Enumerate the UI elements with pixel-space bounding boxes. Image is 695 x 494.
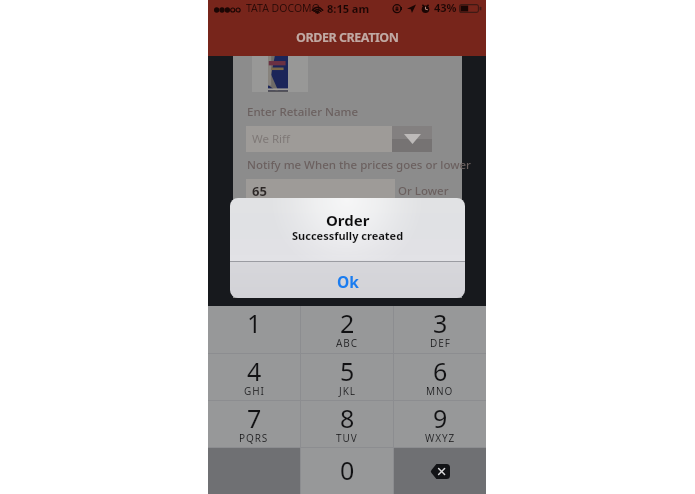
button[interactable]: 7 xyxy=(208,401,300,447)
staticText: TUV xyxy=(336,431,358,445)
button[interactable]: 8 xyxy=(301,401,393,447)
staticText: ORDER CREATION xyxy=(296,29,399,46)
staticText: ABC xyxy=(336,336,358,350)
other: Battery 43 percent xyxy=(459,4,482,13)
button[interactable]: 6 xyxy=(394,354,486,400)
staticText: TATA DOCOMO xyxy=(246,1,320,15)
staticText: Or Lower xyxy=(398,183,449,199)
button[interactable]: 4 xyxy=(208,354,300,400)
staticText: 5 xyxy=(340,354,355,388)
button[interactable]: We Riff xyxy=(246,126,432,152)
staticText: Enter Retailer Name xyxy=(247,104,358,120)
button[interactable]: Ok xyxy=(230,262,465,298)
button[interactable]: Delete xyxy=(394,448,486,494)
staticText: 3 xyxy=(433,306,448,340)
button[interactable]: 0 xyxy=(301,448,393,494)
staticText: PQRS xyxy=(239,431,269,445)
staticText: 8:15 am xyxy=(327,1,370,16)
staticText: 7 xyxy=(247,401,262,435)
staticText: We Riff xyxy=(252,131,290,147)
staticText: DEF xyxy=(430,336,451,350)
staticText: 9 xyxy=(433,401,448,435)
staticText: 8 xyxy=(340,401,355,435)
staticText: 43% xyxy=(434,0,457,15)
staticText: GHI xyxy=(244,384,265,398)
staticText: Order xyxy=(326,210,370,230)
other: Location xyxy=(407,4,416,13)
button[interactable]: 5 xyxy=(301,354,393,400)
staticText: 6 xyxy=(433,354,448,388)
staticText: WXYZ xyxy=(425,431,456,445)
staticText: Notify me When the prices goes or lower xyxy=(247,157,471,173)
staticText: 4 xyxy=(247,354,262,388)
staticText: JKL xyxy=(339,384,356,398)
button[interactable]: ORDER CREATION xyxy=(208,20,486,56)
staticText: Successfully created xyxy=(292,228,404,243)
staticText: MNO xyxy=(426,384,454,398)
staticText: 2 xyxy=(340,306,355,340)
button[interactable]: 1 xyxy=(208,306,300,353)
button[interactable]: 9 xyxy=(394,401,486,447)
button[interactable]: 3 xyxy=(394,306,486,353)
button[interactable]: 2 xyxy=(301,306,393,353)
staticText: 1 xyxy=(247,306,262,340)
staticText: Ok xyxy=(337,271,359,292)
staticText: 0 xyxy=(340,453,355,487)
staticText: 65 xyxy=(252,182,267,200)
other: Alarm xyxy=(421,4,430,13)
other: Rotation lock xyxy=(393,4,402,13)
button[interactable]: 65 xyxy=(246,179,395,207)
